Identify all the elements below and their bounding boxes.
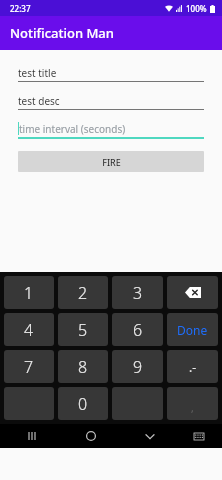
button[interactable]: FIRE bbox=[18, 151, 204, 172]
staticText: test desc bbox=[18, 94, 60, 108]
button[interactable]: Hide keyboard bbox=[137, 424, 163, 448]
staticText: 100% bbox=[186, 3, 207, 14]
button[interactable]: .- bbox=[167, 350, 218, 383]
staticText: 0 bbox=[78, 393, 88, 415]
button[interactable]: 6 bbox=[112, 313, 163, 346]
staticText: 6 bbox=[133, 319, 143, 341]
staticText: 4 bbox=[24, 319, 34, 341]
button[interactable]: Home bbox=[78, 424, 104, 448]
button[interactable]: test desc bbox=[18, 92, 204, 110]
button[interactable]: 3 bbox=[112, 276, 163, 309]
staticText: 9 bbox=[133, 356, 143, 378]
staticText: 2 bbox=[78, 282, 88, 304]
button[interactable]: 0 bbox=[58, 387, 108, 420]
button[interactable]: Recent apps bbox=[19, 424, 45, 448]
button[interactable]: 1 bbox=[4, 276, 54, 309]
staticText: 22:37 bbox=[10, 3, 31, 14]
button[interactable]: 7 bbox=[4, 350, 54, 383]
button[interactable]: 5 bbox=[58, 313, 108, 346]
button[interactable]: 4 bbox=[4, 313, 54, 346]
staticText: FIRE bbox=[102, 156, 121, 168]
staticText: .- bbox=[189, 359, 197, 375]
staticText: 8 bbox=[78, 356, 88, 378]
button[interactable]: 8 bbox=[58, 350, 108, 383]
button[interactable]: Change keyboard bbox=[188, 425, 210, 447]
staticText: test title bbox=[18, 66, 57, 80]
button[interactable]: Done bbox=[167, 313, 218, 346]
staticText: 5 bbox=[78, 319, 88, 341]
staticText: 7 bbox=[24, 356, 34, 378]
button[interactable]: 9 bbox=[112, 350, 163, 383]
staticText: , bbox=[191, 401, 194, 415]
staticText: Done bbox=[177, 322, 208, 338]
staticText: Notification Man bbox=[10, 24, 114, 42]
button[interactable]: time interval (seconds) bbox=[18, 120, 204, 139]
button[interactable]: test title bbox=[18, 64, 204, 82]
staticText: 3 bbox=[133, 282, 143, 304]
button[interactable]: 2 bbox=[58, 276, 108, 309]
button[interactable]: Backspace bbox=[167, 276, 218, 309]
staticText: time interval (seconds) bbox=[19, 122, 126, 136]
staticText: 1 bbox=[24, 282, 34, 304]
